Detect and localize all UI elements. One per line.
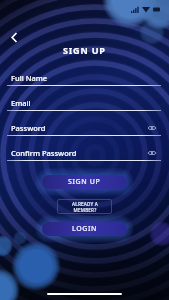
button[interactable]: Show password [147,148,157,158]
button[interactable]: Back [5,28,23,46]
button[interactable]: SIGN UP [42,175,127,189]
staticText: LOGIN [72,224,98,234]
button[interactable]: ALREADY A MEMBER? [57,199,112,214]
staticText: SIGN UP [68,177,101,187]
staticText: SIGN UP [63,44,106,56]
staticText: ALREADY A MEMBER? [72,201,98,213]
button[interactable]: LOGIN [42,222,127,236]
staticText: Email [11,98,161,108]
staticText: Confirm Password [11,148,147,158]
staticText: Password [11,123,147,133]
button[interactable]: Show password [147,123,157,133]
staticText: Full Name [11,73,161,83]
